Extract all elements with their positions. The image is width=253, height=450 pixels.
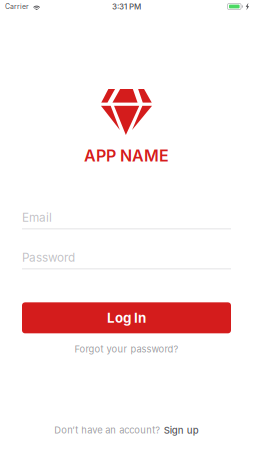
staticText: 3:31 PM — [112, 2, 141, 11]
staticText: Don’t have an account? — [54, 424, 160, 436]
staticText: Sign up — [164, 424, 199, 436]
staticText: Log In — [107, 310, 146, 326]
staticText: Carrier — [5, 2, 29, 11]
staticText: Email — [22, 210, 52, 225]
staticText: Forgot your password? — [74, 343, 178, 355]
staticText: Password — [22, 250, 75, 265]
button[interactable]: Forgot your password? — [70, 339, 182, 359]
button[interactable]: Sign up — [164, 424, 199, 436]
staticText: APP NAME — [84, 146, 169, 165]
button[interactable]: Log In — [22, 302, 231, 333]
